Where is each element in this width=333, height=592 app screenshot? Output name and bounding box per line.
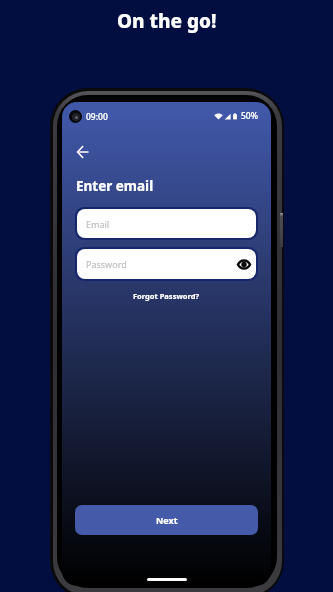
staticText: On the go!	[117, 8, 217, 34]
button[interactable]: Forgot Password?	[127, 288, 206, 304]
staticText: 50%	[241, 110, 258, 122]
staticText: Forgot Password?	[133, 291, 200, 301]
button[interactable]: Back	[69, 139, 95, 165]
staticText: Password	[86, 258, 127, 270]
staticText: Next	[156, 514, 178, 526]
staticText: 09:00	[86, 111, 108, 123]
staticText: Email	[86, 218, 110, 230]
button[interactable]: Show password	[237, 257, 251, 271]
button[interactable]: Next	[75, 505, 258, 535]
staticText: Enter email	[76, 177, 154, 195]
button[interactable]: Password	[77, 249, 256, 279]
button[interactable]: Email	[77, 209, 256, 238]
